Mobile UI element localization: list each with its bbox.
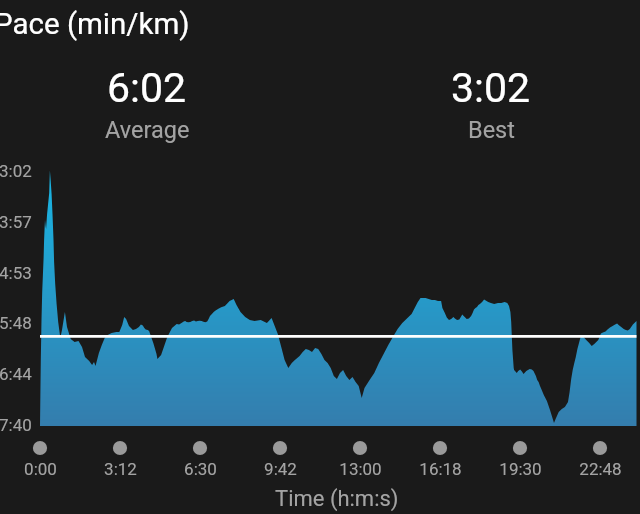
staticText: Time (h:m:s) xyxy=(275,486,399,512)
staticText: 7:40 xyxy=(0,415,32,435)
staticText: 13:00 xyxy=(339,459,382,479)
staticText: 5:48 xyxy=(0,313,32,333)
staticText: Pace (min/km) xyxy=(0,7,190,42)
staticText: Average xyxy=(105,116,190,144)
staticText: 0:00 xyxy=(24,459,57,479)
staticText: 19:30 xyxy=(499,459,542,479)
staticText: 3:02 xyxy=(0,161,32,181)
staticText: 22:48 xyxy=(579,459,622,479)
staticText: 16:18 xyxy=(419,459,462,479)
staticText: 6:30 xyxy=(184,459,217,479)
staticText: 6:44 xyxy=(0,364,32,384)
staticText: 3:12 xyxy=(104,459,137,479)
staticText: 3:02 xyxy=(451,64,531,112)
staticText: 6:02 xyxy=(107,64,187,112)
button[interactable]: 3:02 xyxy=(401,57,581,147)
button[interactable]: 6:02 xyxy=(57,57,237,147)
staticText: 4:53 xyxy=(0,263,32,283)
staticText: 9:42 xyxy=(264,459,297,479)
staticText: Best xyxy=(468,116,515,144)
staticText: 3:57 xyxy=(0,212,32,232)
